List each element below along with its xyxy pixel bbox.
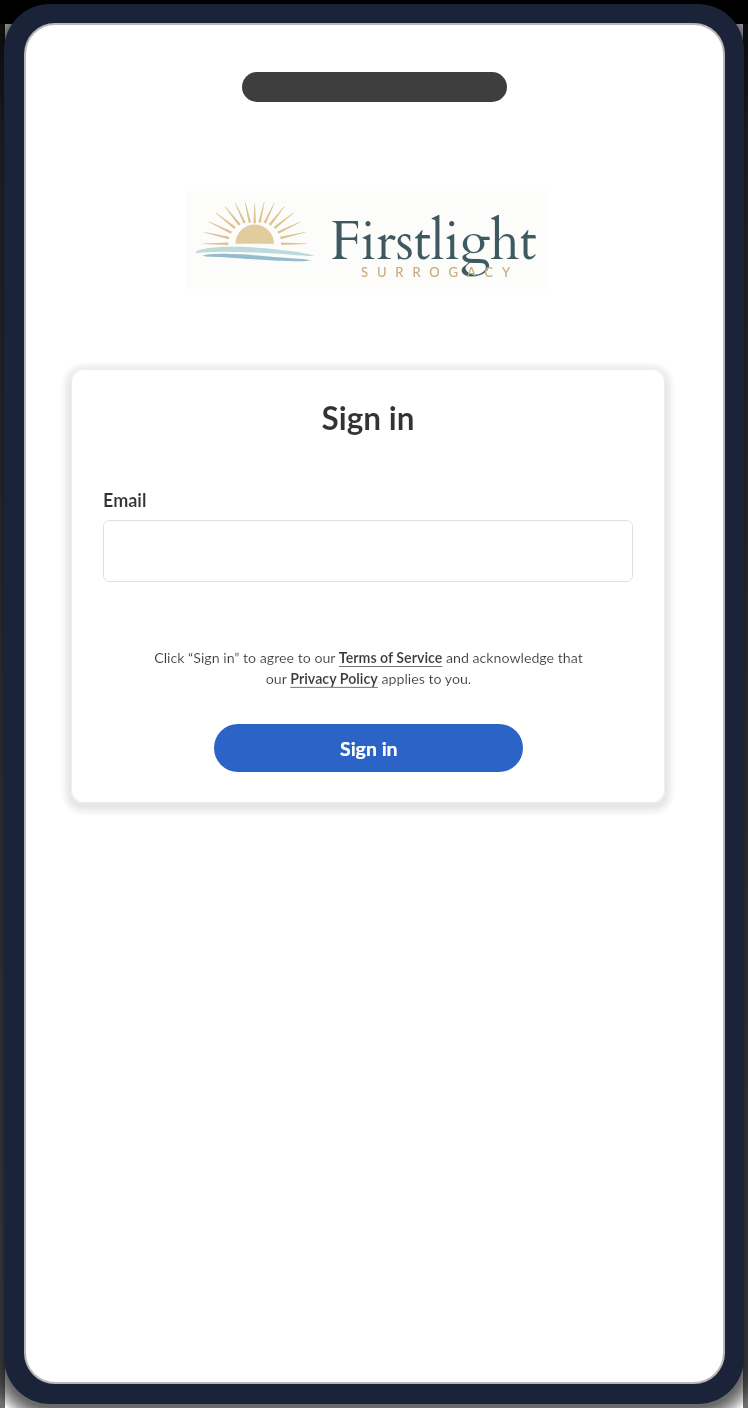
staticText: Click “Sign in” to agree to our Terms of… [144,649,593,687]
staticText: Sign in [340,737,398,760]
button[interactable]: Sign in [214,724,523,772]
staticText: SURROGACY [361,264,519,280]
button[interactable] [103,520,633,582]
staticText: Email [103,489,147,511]
staticText: Sign in [71,399,665,437]
staticText: Firstlight [330,206,537,279]
